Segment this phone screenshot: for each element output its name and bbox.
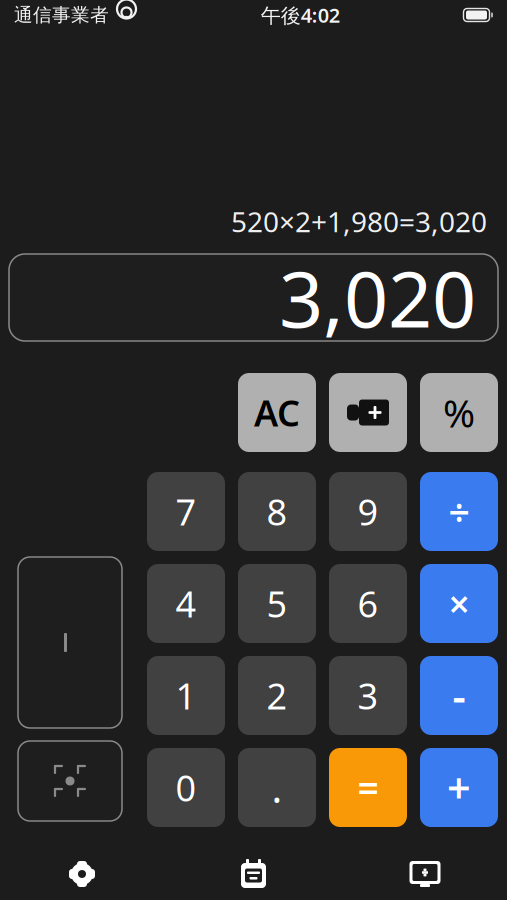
staticText: 3,020 xyxy=(279,246,476,349)
staticText: 2 xyxy=(266,672,287,719)
button[interactable]: 4 xyxy=(147,564,225,643)
button[interactable]: 6 xyxy=(329,564,407,643)
staticText: - xyxy=(452,668,465,723)
button[interactable]: Videos xyxy=(365,850,485,898)
staticText: 通信事業者 xyxy=(14,3,109,26)
button[interactable]: % xyxy=(420,373,498,452)
button[interactable]: 9 xyxy=(329,472,407,551)
button[interactable]: 1 xyxy=(147,656,225,735)
button[interactable]: = xyxy=(329,748,407,827)
button[interactable]: - xyxy=(420,656,498,735)
staticText: 5 xyxy=(266,580,287,627)
staticText: . xyxy=(271,761,282,814)
button[interactable]: 2 xyxy=(238,656,316,735)
button[interactable]: . xyxy=(238,748,316,827)
button[interactable]: 7 xyxy=(147,472,225,551)
button[interactable]: 5 xyxy=(238,564,316,643)
staticText: ÷ xyxy=(448,487,469,536)
button[interactable]: ÷ xyxy=(420,472,498,551)
staticText: 9 xyxy=(357,488,378,535)
button[interactable]: × xyxy=(420,564,498,643)
staticText: 4 xyxy=(175,580,196,627)
button[interactable]: History xyxy=(193,850,313,898)
staticText: × xyxy=(448,579,469,628)
button[interactable]: Back xyxy=(18,557,122,728)
button[interactable]: AC xyxy=(238,373,316,452)
button[interactable]: 8 xyxy=(238,472,316,551)
staticText: + xyxy=(447,760,471,815)
button[interactable]: Settings xyxy=(22,850,142,898)
button[interactable]: + xyxy=(420,748,498,827)
staticText: 0 xyxy=(175,764,196,811)
staticText: AC xyxy=(254,389,300,436)
staticText: 8 xyxy=(266,488,287,535)
button[interactable]: 3 xyxy=(329,656,407,735)
staticText: % xyxy=(443,387,475,438)
staticText: 3 xyxy=(357,672,378,719)
staticText: 7 xyxy=(175,488,196,535)
staticText: 6 xyxy=(357,580,378,627)
staticText: 520×2+1,980=3,020 xyxy=(231,203,487,240)
button[interactable]: 0 xyxy=(147,748,225,827)
staticText: 1 xyxy=(175,672,196,719)
staticText: = xyxy=(357,763,378,812)
button[interactable]: Delete xyxy=(329,373,407,452)
staticText: 午後4:02 xyxy=(261,2,340,28)
button[interactable]: Scan xyxy=(18,741,122,821)
